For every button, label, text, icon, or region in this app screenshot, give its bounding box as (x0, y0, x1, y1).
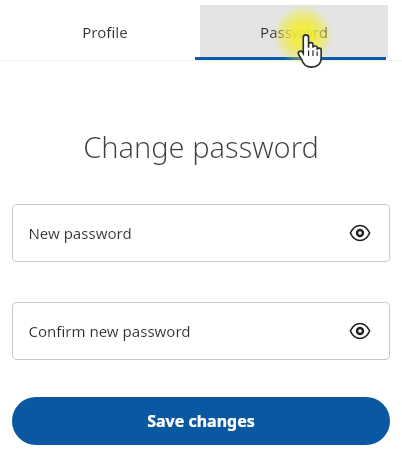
button[interactable]: Confirm new password (12, 302, 390, 360)
button[interactable]: New password (12, 204, 390, 262)
staticText: Password (260, 22, 328, 42)
staticText: Confirm new password (28, 321, 191, 341)
staticText: New password (28, 223, 132, 243)
button[interactable]: Show password (340, 311, 380, 351)
button[interactable]: Show password (340, 213, 380, 253)
button[interactable]: Password (200, 5, 388, 58)
staticText: Profile (82, 22, 128, 42)
staticText: Change password (83, 127, 319, 166)
staticText: Save changes (147, 410, 255, 432)
button[interactable]: Profile (40, 5, 170, 58)
button[interactable]: Save changes (12, 397, 390, 445)
